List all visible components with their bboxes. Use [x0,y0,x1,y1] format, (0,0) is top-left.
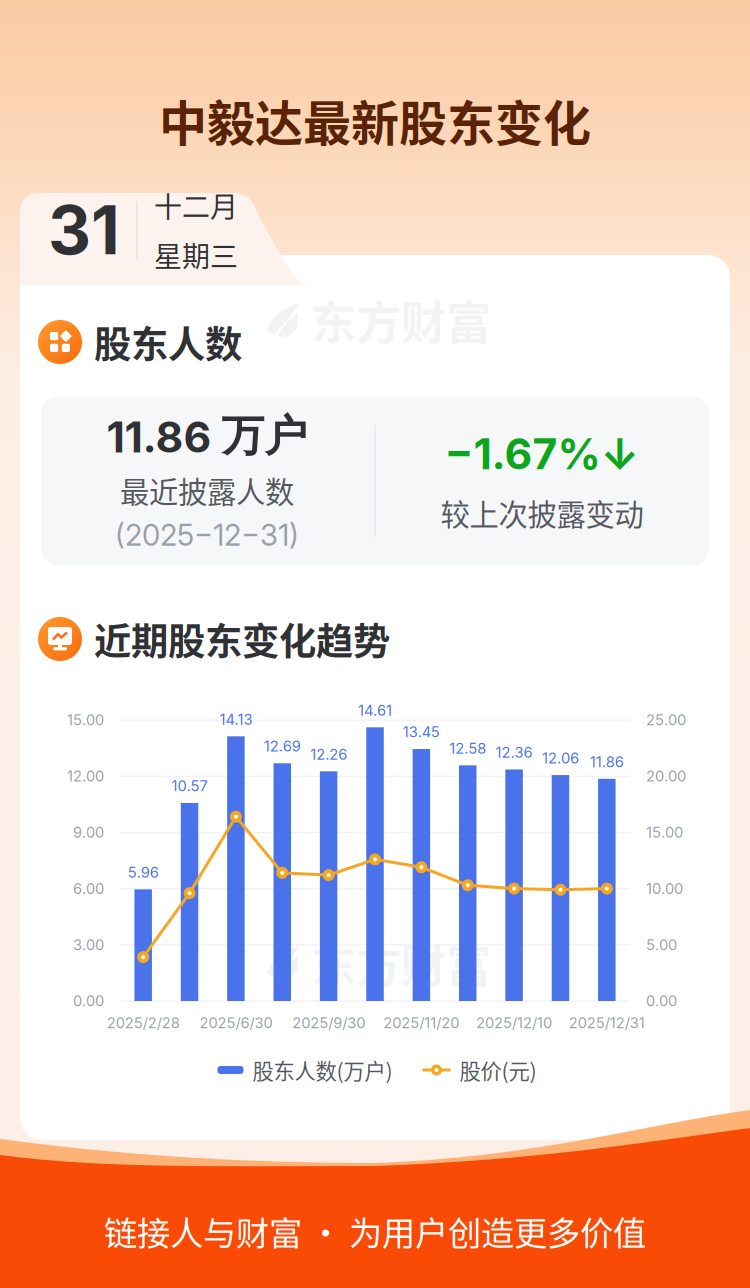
staticText: 2025/9/30 [292,1014,365,1032]
staticText: 6.00 [73,880,104,897]
staticText: 15.00 [67,711,104,729]
staticText: 近期股东变化趋势 [94,612,390,666]
staticText: 20.00 [646,767,686,785]
staticText: 股东人数 [94,315,242,369]
staticText: 2025/6/30 [199,1014,272,1032]
staticText: 0.00 [646,992,677,1010]
staticText: 链接人与财富 · 为用户创造更多价值 [104,1207,646,1255]
staticText: 东方财富 [311,287,491,353]
staticText: 12.36 [496,744,533,761]
staticText: 12.69 [264,737,301,755]
staticText: 中毅达最新股东变化 [159,85,591,155]
staticText: 2025/12/31 [569,1014,645,1032]
staticText: 10.00 [646,880,683,897]
staticText: 5.96 [128,863,159,881]
staticText: −1.67%↓ [444,428,639,479]
staticText: 31 [48,190,120,270]
staticText: 12.06 [542,749,579,767]
staticText: 5.00 [646,936,677,954]
staticText: 9.00 [73,823,104,841]
staticText: 15.00 [646,823,683,841]
staticText: 2025/12/10 [476,1014,552,1032]
staticText: 十二月 [154,185,238,225]
staticText: 东方财富 [311,930,491,996]
staticText: 股价(元) [459,1055,536,1085]
staticText: 2025/11/20 [383,1014,459,1032]
staticText: 14.13 [219,710,252,728]
staticText: 3.00 [73,936,104,954]
staticText: 最近披露人数 [120,469,294,511]
staticText: 25.00 [646,711,686,729]
staticText: 较上次披露变动 [440,492,643,534]
staticText: 星期三 [154,234,238,275]
staticText: 11.86 [590,753,624,771]
staticText: 10.57 [171,777,207,795]
staticText: 13.45 [403,723,440,741]
staticText: 股东人数(万户) [252,1055,392,1085]
staticText: 12.58 [449,739,486,757]
staticText: 14.61 [358,701,392,719]
staticText: 12.00 [67,767,104,785]
staticText: 2025/2/28 [107,1014,180,1032]
staticText: 0.00 [73,992,104,1010]
staticText: 11.86 万户 [106,409,307,463]
staticText: 12.26 [310,745,347,763]
staticText: (2025−12−31) [115,517,299,553]
